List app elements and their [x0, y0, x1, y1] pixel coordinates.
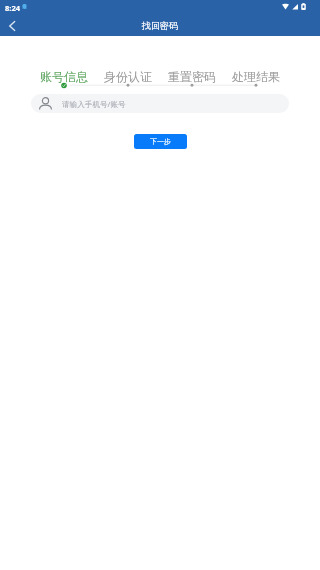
staticText: 重置密码: [168, 69, 216, 83]
staticText: 找回密码: [142, 20, 178, 31]
button[interactable]: 下一步: [134, 134, 187, 149]
button[interactable]: 账号信息: [32, 69, 96, 83]
button[interactable]: 身份认证: [96, 69, 160, 83]
staticText: 8:24: [5, 3, 20, 13]
button[interactable]: 处理结果: [224, 69, 288, 83]
staticText: 账号信息: [40, 69, 88, 83]
staticText: 下一步: [150, 137, 171, 146]
button[interactable]: Back: [1, 15, 22, 36]
staticText: 处理结果: [232, 69, 280, 83]
staticText: 身份认证: [104, 69, 152, 83]
button[interactable]: 重置密码: [160, 69, 224, 83]
staticText: 请输入手机号/账号: [62, 99, 126, 109]
button[interactable]: 请输入手机号/账号: [31, 94, 289, 113]
